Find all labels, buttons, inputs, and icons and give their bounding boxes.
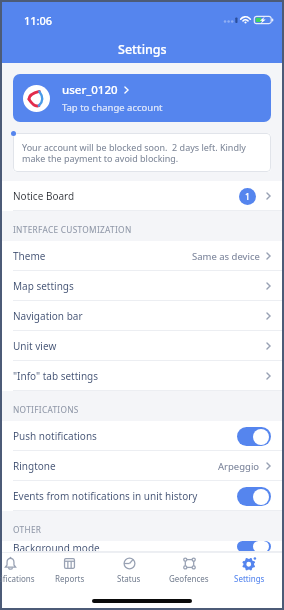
button[interactable]: Notice Board <box>2 181 282 211</box>
button[interactable]: user_0120 <box>13 74 271 122</box>
staticText: Notice Board <box>13 189 75 203</box>
button[interactable]: Events from notifications in unit histor… <box>2 481 282 511</box>
staticText: Push notifications <box>13 429 97 443</box>
staticText: INTERFACE CUSTOMIZATION <box>13 224 132 235</box>
staticText: Unit view <box>13 339 57 353</box>
staticText: Arpeggio <box>218 460 260 473</box>
button[interactable]: Unit view <box>2 331 282 361</box>
staticText: Theme <box>13 249 46 263</box>
button[interactable]: Map settings <box>2 271 282 301</box>
staticText: Map settings <box>13 279 74 293</box>
staticText: Notifications <box>0 573 35 584</box>
button[interactable]: Settings <box>219 552 279 588</box>
button[interactable]: Background mode <box>2 541 282 552</box>
staticText: OTHER <box>13 524 42 535</box>
staticText: Tap to change account <box>62 101 163 114</box>
button[interactable]: Ringtone <box>2 451 282 481</box>
button[interactable]: Status <box>99 552 159 588</box>
button[interactable]: Geofences <box>159 552 219 588</box>
button[interactable]: Push notifications <box>2 421 282 451</box>
button[interactable]: Notifications <box>0 552 40 588</box>
staticText: 11:06 <box>24 13 53 28</box>
staticText: Background mode <box>13 541 100 552</box>
staticText: Your account will be blocked soon. 2 day… <box>22 141 262 165</box>
staticText: NOTIFICATIONS <box>13 404 79 415</box>
button[interactable]: "Info" tab settings <box>2 361 282 391</box>
button[interactable]: Navigation bar <box>2 301 282 331</box>
staticText: Settings <box>118 41 167 58</box>
staticText: "Info" tab settings <box>13 369 99 383</box>
staticText: Status <box>117 573 141 584</box>
staticText: Same as device <box>192 250 260 263</box>
staticText: 1 <box>245 191 250 203</box>
staticText: user_0120 <box>62 82 118 98</box>
staticText: Navigation bar <box>13 309 83 323</box>
staticText: Ringtone <box>13 459 56 473</box>
staticText: Events from notifications in unit histor… <box>13 489 198 503</box>
staticText: Settings <box>234 573 265 584</box>
staticText: Reports <box>55 573 85 584</box>
button[interactable]: Reports <box>40 552 99 588</box>
button[interactable]: Theme <box>2 241 282 271</box>
staticText: Geofences <box>169 573 209 584</box>
